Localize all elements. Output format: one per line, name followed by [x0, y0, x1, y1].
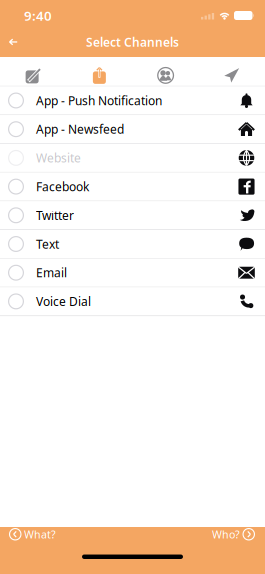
staticText: Who? — [212, 527, 240, 541]
button[interactable]: Website — [0, 144, 265, 173]
button[interactable]: App - Push Notification — [0, 86, 265, 115]
button[interactable]: Select channels — [66, 61, 132, 90]
button[interactable]: Email — [0, 259, 265, 287]
staticText: Twitter — [36, 207, 74, 223]
staticText: App - Newsfeed — [36, 121, 124, 137]
staticText: App - Push Notification — [36, 92, 162, 108]
button[interactable]: App - Newsfeed — [0, 115, 265, 144]
staticText: Voice Dial — [36, 293, 91, 309]
staticText: Facebook — [36, 179, 89, 194]
button[interactable]: Twitter — [0, 201, 265, 230]
staticText: Select Channels — [86, 34, 179, 50]
button[interactable]: Text — [0, 230, 265, 259]
staticText: 9:40 — [24, 7, 52, 24]
button[interactable]: Who? — [212, 527, 265, 541]
button[interactable]: Send — [199, 61, 265, 90]
staticText: Text — [36, 236, 59, 252]
button[interactable]: What? — [0, 527, 56, 541]
staticText: Email — [36, 265, 67, 281]
button[interactable]: Back — [0, 31, 18, 53]
button[interactable]: Compose message — [0, 61, 66, 90]
button[interactable]: Recipients — [132, 61, 199, 90]
button[interactable]: Facebook — [0, 173, 265, 201]
staticText: Website — [36, 150, 81, 166]
staticText: What? — [24, 527, 56, 541]
button[interactable]: Voice Dial — [0, 287, 265, 316]
